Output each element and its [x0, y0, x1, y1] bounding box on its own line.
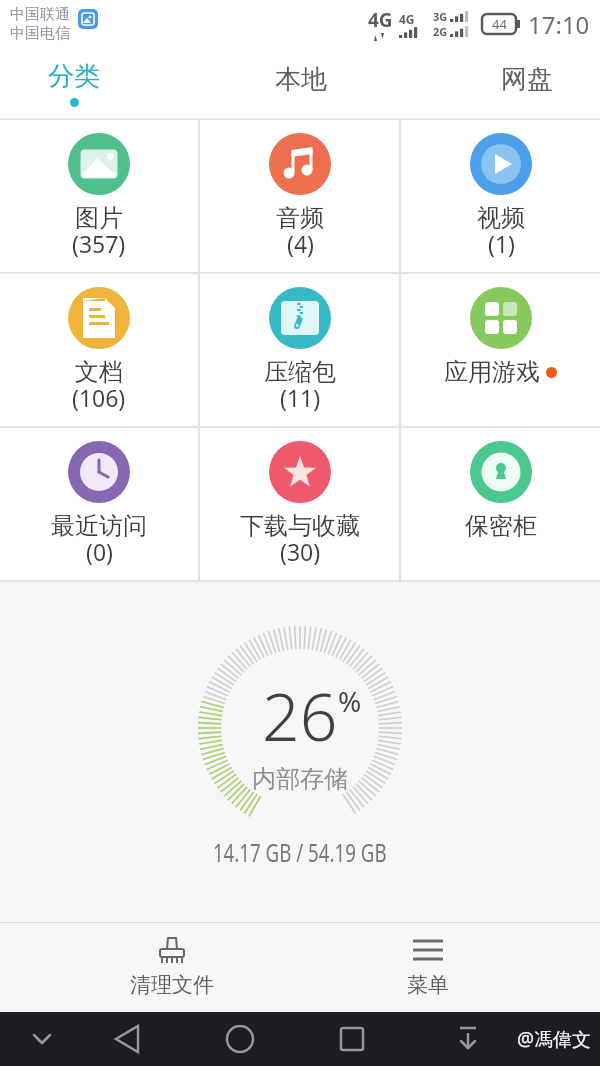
button[interactable]: 最近访问 [0, 428, 198, 580]
staticText: @馮偉文 [517, 1026, 592, 1052]
staticText: % [338, 682, 362, 720]
staticText: 中国联通 [10, 5, 70, 24]
button[interactable]: 菜单 [348, 923, 508, 1012]
button[interactable]: 网盘 [454, 48, 600, 118]
button[interactable] [300, 1012, 450, 1066]
staticText: 26 [262, 670, 338, 760]
staticText: 保密柜 [465, 511, 537, 541]
staticText: (106) [72, 382, 126, 413]
button[interactable]: 视频 [401, 120, 600, 272]
staticText: 2G [433, 24, 448, 39]
button[interactable]: 音频 [200, 120, 399, 272]
button[interactable]: 本地 [148, 48, 454, 118]
staticText: 下载与收藏 [240, 511, 360, 541]
staticText: (1) [488, 228, 515, 259]
staticText: 4G [368, 7, 393, 33]
staticText: 视频 [477, 203, 525, 233]
staticText: 中国电信 [10, 24, 70, 43]
staticText: 应用游戏 [444, 357, 540, 387]
staticText: 44 [492, 15, 507, 33]
staticText: 3G [433, 9, 448, 24]
button[interactable]: 分类 [0, 48, 148, 118]
staticText: (4) [287, 228, 314, 259]
button[interactable]: 文档 [0, 274, 198, 426]
staticText: 分类 [48, 60, 100, 93]
button[interactable]: 下载与收藏 [200, 428, 399, 580]
staticText: (11) [280, 382, 321, 413]
button[interactable] [150, 1012, 300, 1066]
button[interactable] [450, 1012, 600, 1066]
staticText: 音频 [276, 203, 324, 233]
button[interactable]: 压缩包 [200, 274, 399, 426]
staticText: 本地 [275, 63, 327, 96]
staticText: 菜单 [407, 972, 449, 998]
staticText: 4G [399, 11, 415, 27]
staticText: 图片 [75, 203, 123, 233]
button[interactable]: 应用游戏 [401, 274, 600, 426]
staticText: (30) [280, 536, 321, 567]
staticText: 网盘 [501, 63, 553, 96]
staticText: 清理文件 [130, 972, 214, 998]
staticText: 最近访问 [51, 511, 147, 541]
button[interactable]: 图片 [0, 120, 198, 272]
staticText: 文档 [75, 357, 123, 387]
staticText: (357) [72, 228, 126, 259]
button[interactable] [0, 1012, 150, 1066]
staticText: 14.17 GB / 54.19 GB [213, 834, 387, 869]
staticText: 压缩包 [264, 357, 336, 387]
button[interactable]: 清理文件 [92, 923, 252, 1012]
button[interactable]: 保密柜 [401, 428, 600, 580]
staticText: 内部存储 [252, 764, 348, 794]
staticText: (0) [86, 536, 113, 567]
staticText: 17:10 [528, 8, 590, 41]
